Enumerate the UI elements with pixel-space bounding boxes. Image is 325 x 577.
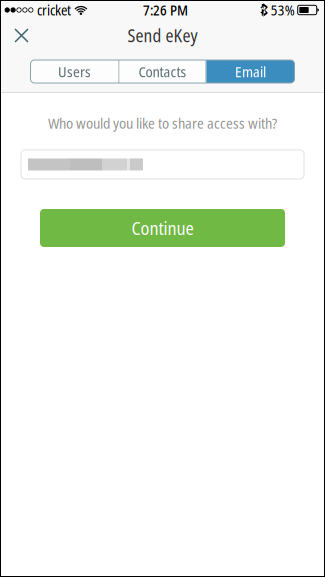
button[interactable]: Continue bbox=[40, 209, 285, 247]
button[interactable]: Users bbox=[30, 60, 118, 83]
button[interactable]: Close bbox=[0, 20, 43, 51]
staticText: 53% bbox=[271, 0, 295, 20]
button[interactable]: Contacts bbox=[119, 60, 205, 83]
button[interactable]: Email bbox=[206, 60, 294, 83]
staticText: Contacts bbox=[138, 61, 186, 81]
staticText: cricket bbox=[37, 0, 71, 20]
staticText: Users bbox=[58, 61, 91, 81]
staticText: 7:26 PM bbox=[143, 0, 188, 20]
staticText: Send eKey bbox=[127, 24, 197, 47]
staticText: Email bbox=[235, 61, 266, 81]
staticText: Who would you like to share access with? bbox=[48, 113, 277, 133]
staticText: Continue bbox=[131, 216, 193, 240]
